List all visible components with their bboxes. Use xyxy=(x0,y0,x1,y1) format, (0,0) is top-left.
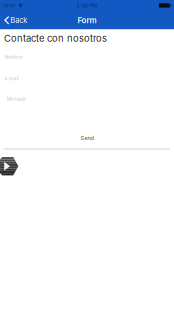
staticText: Carrier xyxy=(2,3,16,8)
staticText: Contacte con nosotros xyxy=(4,33,107,44)
staticText: Form xyxy=(77,15,96,25)
staticText: e-mail xyxy=(5,76,19,81)
staticText: Nombre: xyxy=(5,54,24,60)
staticText: Mensaje xyxy=(7,96,26,102)
button[interactable]: Send xyxy=(0,131,174,144)
staticText: Send xyxy=(80,135,93,141)
staticText: 2:08 PM xyxy=(76,2,97,9)
button[interactable]: Back xyxy=(0,11,32,29)
button[interactable]: Nombre: xyxy=(0,50,174,63)
staticText: Back xyxy=(10,16,27,25)
button[interactable]: Mensaje xyxy=(0,92,174,105)
button[interactable]: Play xyxy=(0,157,18,175)
